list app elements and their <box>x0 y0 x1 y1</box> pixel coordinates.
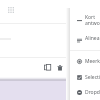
staticText: Kort antwoord <box>85 14 100 27</box>
button[interactable]: Meerkeuze <box>70 53 100 69</box>
staticText: Dropdown <box>85 89 100 96</box>
button[interactable]: Selectievakjes <box>70 69 100 85</box>
staticText: Meerkeuze <box>85 58 100 65</box>
button[interactable]: Dropdown <box>70 85 100 100</box>
button[interactable]: Kort antwoord <box>70 10 100 30</box>
button[interactable]: Alinea <box>70 30 100 50</box>
staticText: Alinea <box>85 35 100 42</box>
button[interactable]: Duplicate <box>41 61 54 74</box>
button[interactable]: Delete <box>53 61 66 74</box>
staticText: Selectievakjes <box>85 74 100 81</box>
button[interactable]: Google apps <box>5 4 15 14</box>
